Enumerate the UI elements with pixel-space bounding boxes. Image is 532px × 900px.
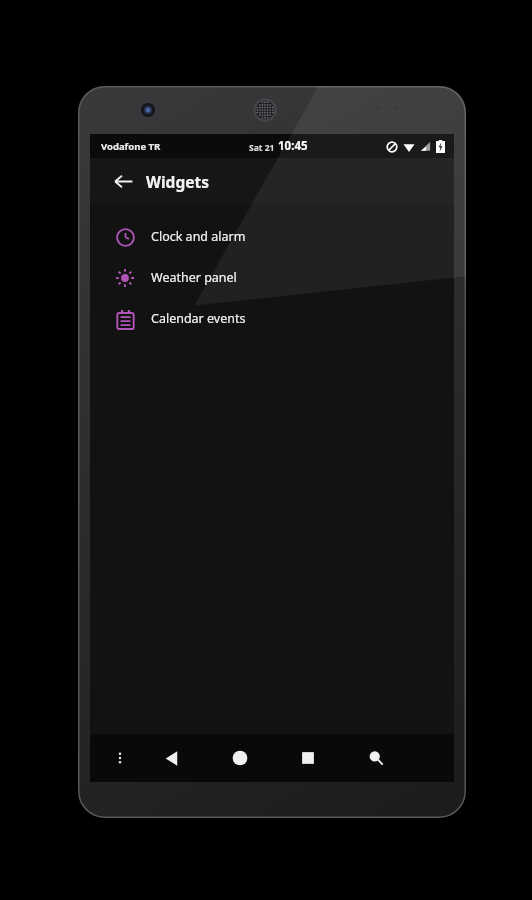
staticText: Vodafone TR — [101, 140, 161, 153]
button[interactable]: Search — [356, 738, 396, 778]
button[interactable]: Back — [108, 166, 138, 196]
button[interactable]: Menu — [103, 741, 137, 775]
button[interactable]: Recent apps — [288, 738, 328, 778]
button[interactable]: Weather panel — [90, 257, 454, 298]
button[interactable]: Home — [220, 738, 260, 778]
button[interactable]: Calendar events — [90, 298, 454, 339]
staticText: Widgets — [146, 171, 209, 192]
staticText: Calendar events — [151, 310, 246, 327]
staticText: Clock and alarm — [151, 228, 246, 245]
staticText: 10:45 — [278, 138, 308, 154]
button[interactable]: Clock and alarm — [90, 216, 454, 257]
staticText: Weather panel — [151, 269, 237, 286]
button[interactable]: Back — [152, 738, 192, 778]
staticText: Sat 21 — [249, 142, 275, 154]
